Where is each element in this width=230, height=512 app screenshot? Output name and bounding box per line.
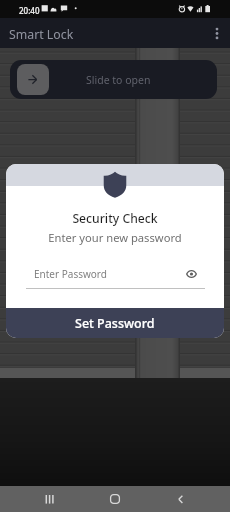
other: Slide to open bbox=[17, 64, 49, 95]
button[interactable]: Set Password bbox=[6, 308, 224, 338]
staticText: Enter your new password bbox=[6, 230, 224, 245]
staticText: Smart Lock bbox=[9, 26, 74, 43]
button[interactable]: Home bbox=[82, 486, 147, 512]
button[interactable]: More options bbox=[205, 21, 229, 45]
staticText: Enter Password bbox=[34, 267, 107, 281]
button[interactable]: Back bbox=[147, 486, 212, 512]
button[interactable]: Show password bbox=[180, 263, 202, 285]
button[interactable]: Slide to open bbox=[10, 60, 217, 99]
staticText: 20:40 bbox=[19, 5, 40, 16]
staticText: Security Check bbox=[6, 210, 224, 227]
button[interactable]: Recents bbox=[18, 486, 82, 512]
staticText: Set Password bbox=[75, 315, 155, 332]
staticText: Slide to open bbox=[86, 73, 151, 87]
